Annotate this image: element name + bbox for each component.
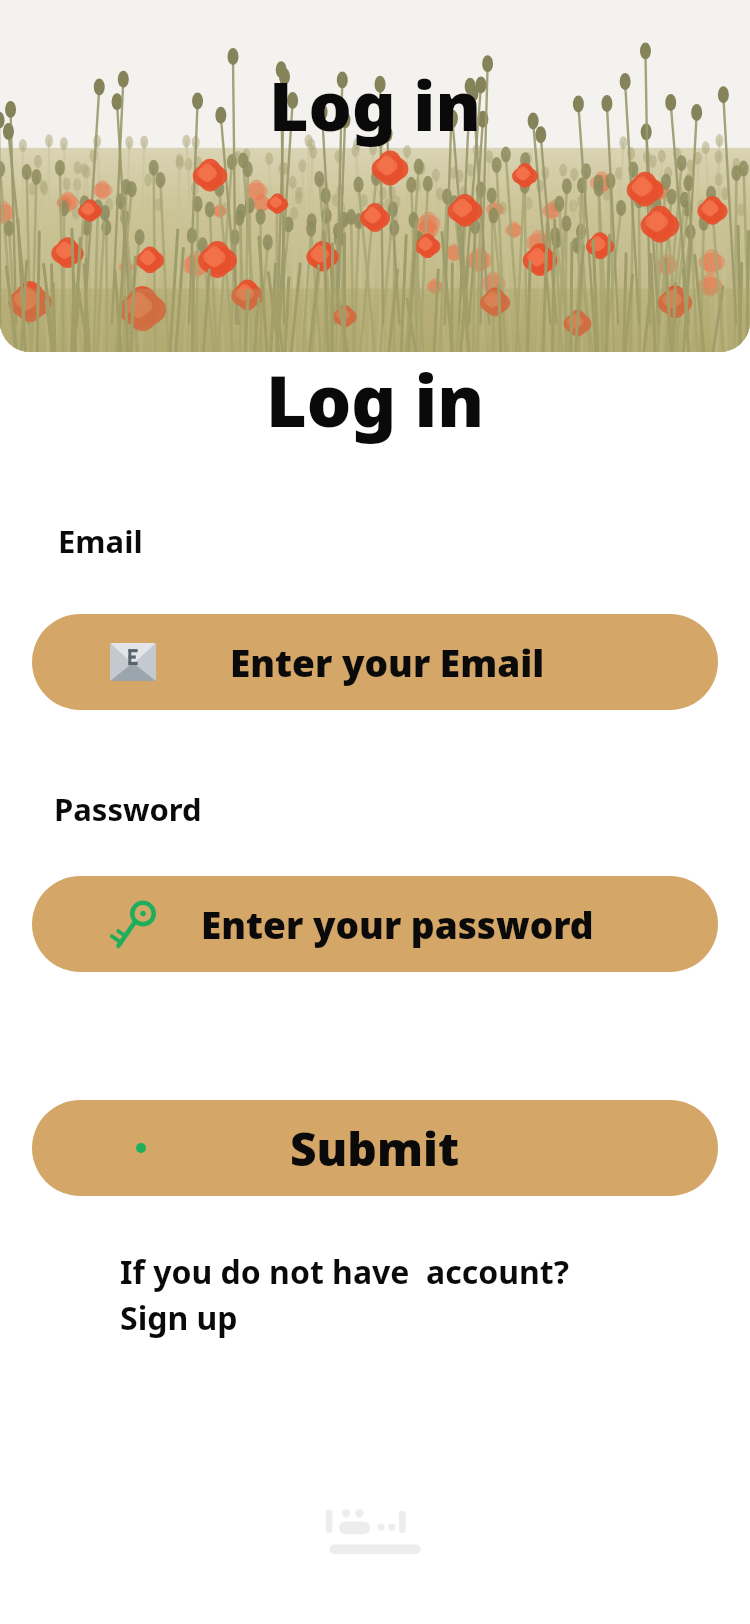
staticText: Submit [290,1117,460,1180]
other: Email [110,643,156,681]
other: Password [110,898,160,950]
staticText: Email [58,520,143,562]
staticText: Enter your password [201,899,594,949]
button[interactable]: Email [32,614,718,710]
staticText: Log in [269,58,481,151]
staticText: If you do not have account? Sign up [120,1250,570,1339]
staticText: Log in [266,352,485,444]
staticText: Password [54,788,202,830]
button[interactable]: If you do not have account? Sign up [120,1250,570,1339]
button[interactable]: Password [32,876,718,972]
staticText: Enter your Email [230,637,545,687]
button[interactable]: Submit [32,1100,718,1196]
